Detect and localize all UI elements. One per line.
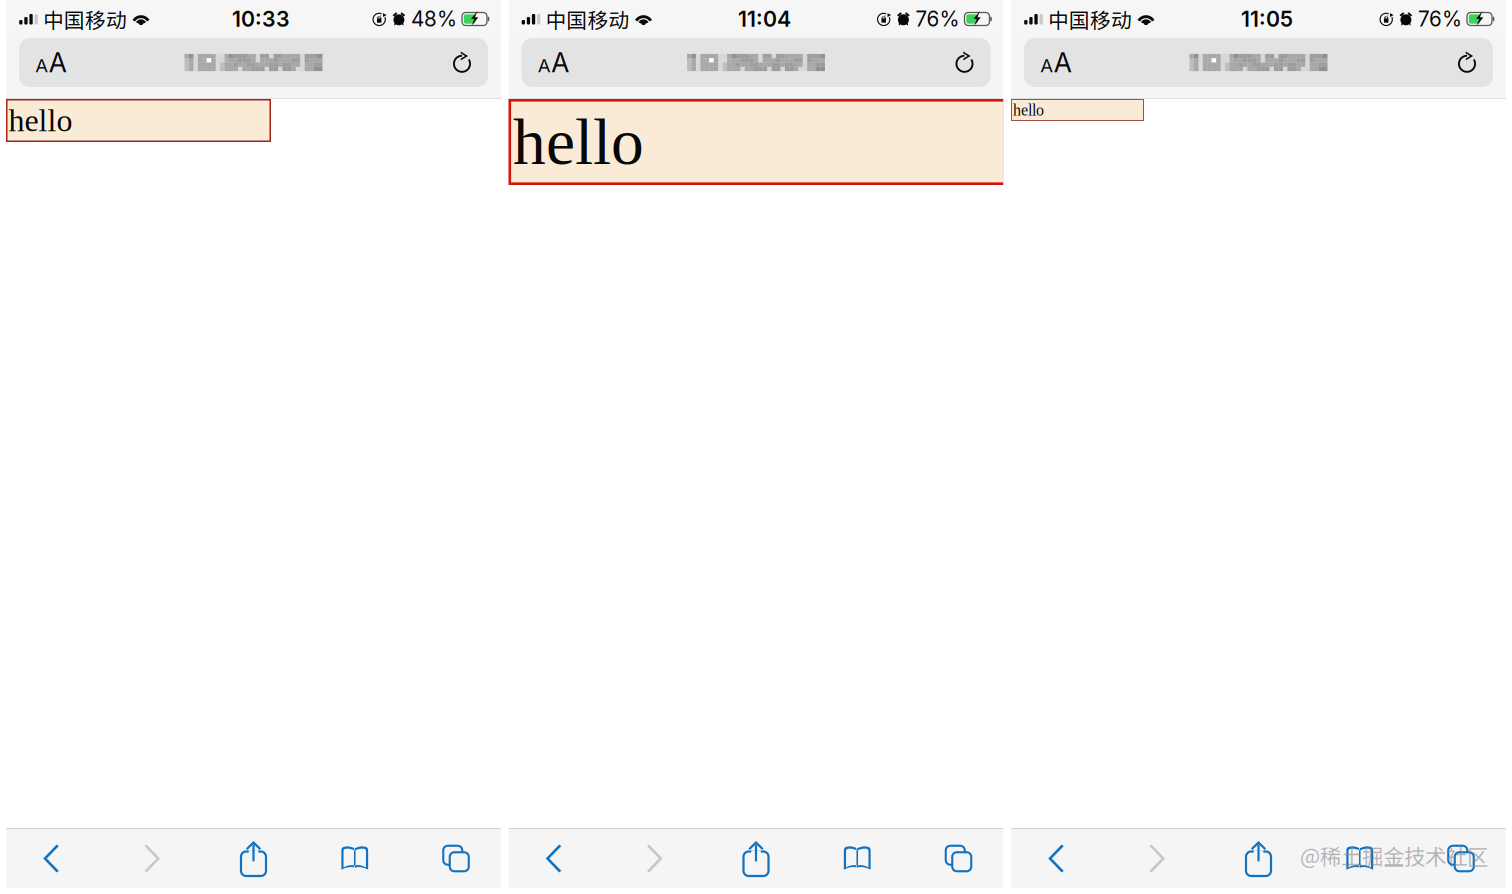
staticText: 76% xyxy=(1418,6,1462,31)
staticText: 中国移动 xyxy=(43,4,127,34)
staticText: A xyxy=(1054,46,1072,79)
staticText: @稀土掘金技术社区 xyxy=(1300,840,1488,871)
staticText: 中国移动 xyxy=(545,4,629,34)
button[interactable]: Reload xyxy=(938,38,990,87)
button[interactable]: Reload xyxy=(436,38,488,87)
button[interactable]: Share xyxy=(222,832,284,884)
button[interactable]: Reload xyxy=(1441,38,1493,87)
staticText: A xyxy=(1040,54,1053,77)
button[interactable]: Page settings xyxy=(521,38,585,87)
staticText: 11:04 xyxy=(738,6,791,32)
button[interactable]: Forward xyxy=(121,832,183,884)
staticText: A xyxy=(551,46,569,79)
button[interactable]: Bookmarks xyxy=(324,832,386,884)
staticText: A xyxy=(538,54,551,77)
button[interactable]: Bookmarks xyxy=(1329,832,1391,884)
button[interactable]: Tabs xyxy=(425,832,487,884)
staticText: 11:05 xyxy=(1241,6,1293,32)
staticText: 48% xyxy=(411,6,457,31)
button[interactable]: Back xyxy=(522,832,584,884)
staticText: A xyxy=(35,54,48,77)
staticText: 中国移动 xyxy=(1048,4,1132,34)
button[interactable]: Share xyxy=(725,832,787,884)
staticText: hello xyxy=(1013,101,1044,119)
button[interactable]: Share xyxy=(1227,832,1289,884)
staticText: hello xyxy=(513,106,644,178)
button[interactable]: Bookmarks xyxy=(826,832,888,884)
button[interactable]: Page settings xyxy=(1024,38,1088,87)
staticText: 10:33 xyxy=(232,6,290,32)
staticText: A xyxy=(49,46,67,79)
button[interactable]: Back xyxy=(20,832,82,884)
button[interactable]: Back xyxy=(1025,832,1087,884)
button[interactable]: Forward xyxy=(1126,832,1188,884)
staticText: hello xyxy=(8,103,72,138)
button[interactable]: Forward xyxy=(624,832,686,884)
button[interactable]: Page settings xyxy=(19,38,83,87)
button[interactable]: Tabs xyxy=(927,832,989,884)
button[interactable]: Tabs xyxy=(1430,832,1492,884)
staticText: 76% xyxy=(915,6,959,31)
